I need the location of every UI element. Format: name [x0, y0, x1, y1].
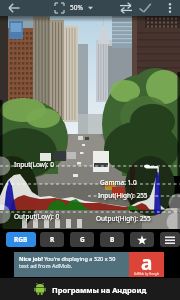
button[interactable] [52, 2, 66, 14]
staticText: test ad from AdMob. [19, 262, 73, 269]
staticText: Output(Low): 0 [14, 212, 60, 221]
staticText: Nice job! You're displaying a 320 x 50 [19, 255, 116, 262]
button[interactable]: Nice job! You're displaying a 320 x 50 [14, 252, 164, 277]
button[interactable] [160, 232, 180, 247]
staticText: Программы на Андроид [52, 285, 147, 295]
staticText: R [50, 235, 55, 244]
staticText: G [80, 235, 85, 244]
staticText: Gamma: 1.0 [100, 178, 137, 187]
button[interactable]: R [40, 232, 64, 247]
button[interactable]: B [100, 232, 124, 247]
button[interactable] [137, 2, 153, 14]
staticText: RGB [14, 235, 28, 244]
staticText: Output(High): 255 [96, 214, 151, 223]
staticText: Input(Low): 0 [14, 160, 54, 169]
staticText: AdMob by Google [134, 272, 160, 276]
button[interactable] [163, 2, 177, 14]
button[interactable]: G [70, 232, 94, 247]
button[interactable] [4, 2, 22, 14]
button[interactable]: 50% [70, 3, 83, 12]
staticText: Input(High): 255 [98, 191, 148, 200]
button[interactable]: Программы на Андроид [0, 278, 180, 300]
staticText: a [141, 250, 153, 275]
button[interactable] [117, 2, 134, 14]
button[interactable] [130, 232, 154, 247]
button[interactable]: RGB [6, 232, 36, 247]
staticText: B [110, 235, 115, 244]
